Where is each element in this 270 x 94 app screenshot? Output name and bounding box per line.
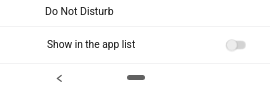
button[interactable]: Home (127, 75, 145, 80)
staticText: Show in the app list (47, 39, 136, 51)
button[interactable]: Show in the app list (223, 33, 249, 57)
button[interactable]: Do Not Disturb (0, 0, 270, 26)
staticText: Do Not Disturb (45, 5, 114, 17)
button[interactable]: Show in the app list (0, 27, 270, 63)
staticText: Show in the app list (47, 39, 136, 51)
button[interactable]: Back (48, 67, 69, 88)
staticText: Do Not Disturb (45, 5, 114, 17)
